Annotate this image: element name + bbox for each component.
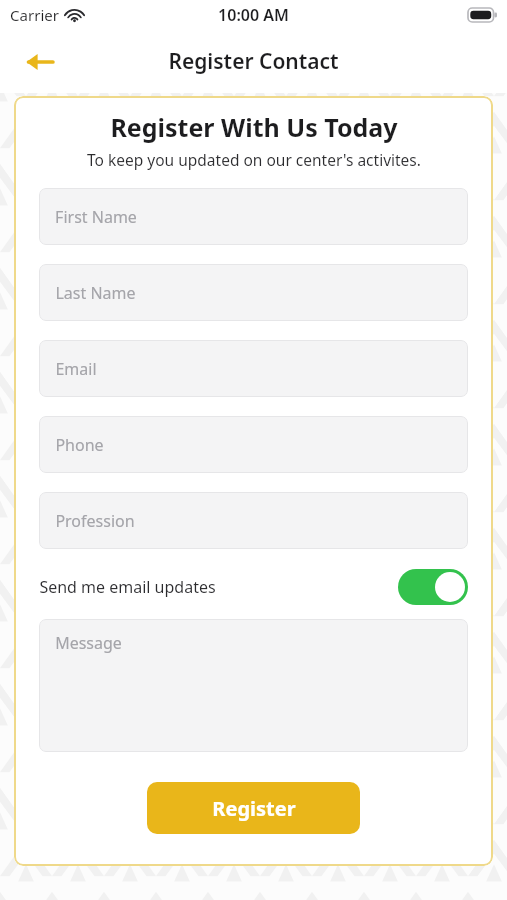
button[interactable]: Send me email updates <box>39 567 468 607</box>
staticText: To keep you updated on our center's acti… <box>87 149 421 170</box>
button[interactable]: Back <box>13 38 67 86</box>
staticText: Carrier <box>10 5 59 25</box>
staticText: Send me email updates <box>39 576 216 598</box>
staticText: Last Name <box>55 282 136 304</box>
button[interactable]: Phone <box>39 416 468 473</box>
staticText: First Name <box>55 206 137 228</box>
staticText: Register <box>212 795 296 822</box>
staticText: Message <box>55 632 122 654</box>
staticText: Phone <box>55 434 104 456</box>
staticText: 10:00 AM <box>218 4 289 26</box>
staticText: Profession <box>55 510 135 532</box>
button[interactable]: Profession <box>39 492 468 549</box>
staticText: Register With Us Today <box>110 110 398 144</box>
staticText: Email <box>55 358 97 380</box>
staticText: Register Contact <box>168 47 339 76</box>
button[interactable]: Register <box>147 782 360 834</box>
button[interactable]: First Name <box>39 188 468 245</box>
button[interactable]: Last Name <box>39 264 468 321</box>
button[interactable]: Email <box>39 340 468 397</box>
button[interactable]: Message <box>39 619 468 752</box>
